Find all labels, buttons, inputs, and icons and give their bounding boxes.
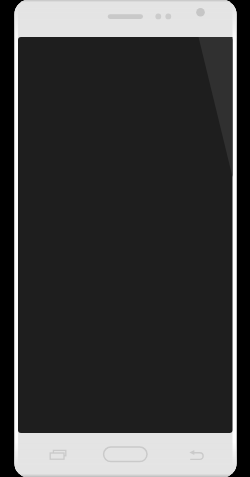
button[interactable]: Home [100,443,151,466]
button[interactable]: Back [184,443,210,467]
button[interactable]: Recent apps [44,443,70,467]
